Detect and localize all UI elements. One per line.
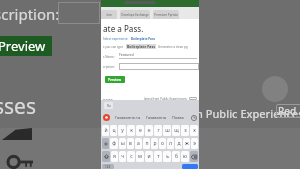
staticText: х (193, 127, 196, 134)
staticText: ж (185, 140, 189, 147)
staticText: е (139, 127, 142, 134)
staticText: sses (103, 97, 114, 100)
staticText: ф (112, 140, 116, 147)
staticText: б (175, 153, 178, 160)
button[interactable]: м (136, 151, 144, 162)
staticText: я (113, 153, 116, 160)
button[interactable]: Preview (105, 76, 125, 83)
button[interactable]: к (127, 125, 135, 136)
button[interactable]: ш (163, 125, 171, 136)
button[interactable]: о (159, 138, 166, 149)
staticText: Generates a clean pg (158, 45, 188, 49)
staticText: з (184, 127, 187, 134)
button[interactable]: Backspace (190, 151, 198, 162)
staticText: л (169, 140, 172, 147)
staticText: Preview (0, 37, 46, 55)
button[interactable]: л (167, 138, 174, 149)
button[interactable]: щ (172, 125, 180, 136)
staticText: п (145, 140, 149, 147)
staticText: э (193, 140, 196, 147)
staticText: ate a Pass. (103, 23, 144, 34)
button[interactable]: Preview (0, 36, 52, 56)
button[interactable]: е (136, 125, 144, 136)
staticText: n Public Experiences: (196, 106, 300, 121)
staticText: ц (112, 127, 116, 134)
staticText: й (104, 127, 108, 134)
button[interactable]: а (135, 138, 142, 149)
button[interactable]: Voice (103, 114, 110, 121)
button[interactable]: р (151, 138, 158, 149)
staticText: у (121, 127, 124, 134)
staticText: s Name: (103, 55, 119, 59)
staticText: latest from Public Experiences: (144, 97, 188, 100)
staticText: 123 (105, 165, 111, 169)
staticText: д (177, 140, 181, 147)
staticText: scription: (0, 4, 60, 24)
button[interactable]: ф (110, 138, 118, 149)
staticText: Preview (108, 77, 122, 82)
button[interactable]: Ru (104, 102, 113, 109)
staticText: Featured (119, 52, 134, 57)
staticText: р (153, 140, 157, 147)
staticText: Boilerplate Pass (127, 44, 155, 49)
staticText: к (130, 127, 133, 134)
staticText: cription: (103, 65, 119, 69)
button[interactable]: д (175, 138, 182, 149)
button[interactable]: й (102, 125, 109, 136)
button[interactable]: п (143, 138, 150, 149)
button[interactable]: ц (110, 125, 117, 136)
staticText: щ (174, 127, 179, 134)
staticText: Ru (107, 104, 111, 108)
staticText: а (137, 140, 140, 147)
button[interactable]: ы (119, 138, 126, 149)
button[interactable]: х (190, 125, 198, 136)
button[interactable]: Позва (172, 115, 184, 120)
button[interactable]: Key (6, 148, 34, 169)
button[interactable]: Enter (182, 164, 198, 169)
staticText: Premium Ppristo (154, 13, 178, 17)
staticText: ю (183, 153, 187, 160)
button[interactable]: с (127, 151, 135, 162)
button[interactable]: 123 (102, 164, 114, 169)
staticText: м (138, 153, 142, 160)
button[interactable]: ч (119, 151, 126, 162)
button[interactable]: Shift (102, 151, 110, 162)
staticText: о (161, 140, 164, 147)
button[interactable]: и (145, 151, 153, 162)
button[interactable]: Develope Exchange (120, 10, 150, 19)
staticText: ш (165, 127, 170, 134)
button[interactable]: ılon (101, 10, 117, 19)
staticText: s you can type (103, 45, 124, 49)
staticText: и (147, 153, 151, 160)
button[interactable]: Газаванне-та (115, 115, 141, 120)
staticText: в (129, 140, 132, 147)
staticText: Develope Exchange (121, 13, 149, 17)
staticText: Boilerplate Pass (131, 37, 155, 41)
staticText: ь (166, 153, 169, 160)
button[interactable]: з (181, 125, 189, 136)
button[interactable]: ж (183, 138, 190, 149)
button[interactable]: н (145, 125, 153, 136)
button[interactable] (102, 138, 109, 149)
button[interactable]: Premium Ppristo (153, 10, 179, 19)
staticText: sses (0, 92, 37, 121)
button[interactable]: г (154, 125, 162, 136)
button[interactable]: э (191, 138, 198, 149)
button[interactable]: т (154, 151, 162, 162)
staticText: Red (278, 104, 297, 118)
staticText: ч (121, 153, 124, 160)
button[interactable]: у (118, 125, 126, 136)
staticText: ы (121, 140, 125, 147)
button[interactable]: Газаванна (146, 115, 166, 120)
button[interactable]: я (111, 151, 118, 162)
staticText: ılon (106, 13, 112, 17)
staticText: с (130, 153, 133, 160)
staticText: т (157, 153, 160, 160)
button[interactable]: в (127, 138, 134, 149)
button[interactable]: б (172, 151, 180, 162)
button[interactable]: ь (163, 151, 171, 162)
staticText: Select experience: (103, 37, 129, 41)
button[interactable]: ю (181, 151, 189, 162)
button[interactable]: Recent (190, 114, 197, 121)
staticText: н (147, 127, 151, 134)
